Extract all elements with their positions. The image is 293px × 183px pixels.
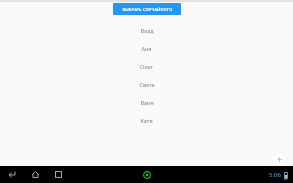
button[interactable]: Аня <box>0 39 293 57</box>
staticText: Влад <box>140 27 154 34</box>
other: Status indicator <box>140 168 153 181</box>
staticText: Ваня <box>140 99 154 106</box>
staticText: 5:06 <box>269 171 281 179</box>
button[interactable]: Света <box>0 75 293 93</box>
button[interactable]: Back <box>6 168 19 181</box>
button[interactable]: Ваня <box>0 93 293 111</box>
button[interactable]: Home <box>29 168 42 181</box>
button[interactable]: Катя <box>0 111 293 129</box>
staticText: Катя <box>140 117 153 124</box>
staticText: Аня <box>141 45 152 52</box>
button[interactable]: Влад <box>0 21 293 39</box>
button[interactable]: Recent apps <box>52 168 65 181</box>
staticText: ВЫБРАТЬ СЛУЧАЙНОГО <box>122 7 173 12</box>
button[interactable]: Олег <box>0 57 293 75</box>
button[interactable]: ВЫБРАТЬ СЛУЧАЙНОГО <box>113 3 181 15</box>
staticText: Олег <box>140 63 153 70</box>
button[interactable]: Add <box>272 152 287 167</box>
staticText: Света <box>139 81 155 88</box>
